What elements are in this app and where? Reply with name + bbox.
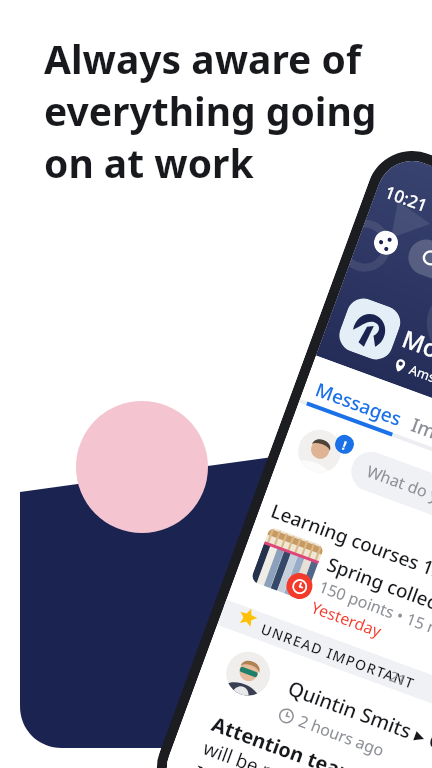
staticText: Amsterdam xyxy=(407,360,432,402)
staticText: 150 points • 15 min xyxy=(316,576,432,646)
staticText: 2 hours ago xyxy=(295,710,387,761)
button[interactable]: Search xyxy=(403,234,432,323)
staticText: Learning courses 12 xyxy=(267,498,432,585)
button[interactable]: What do you think? xyxy=(345,446,432,563)
staticText: Always aware of everything going on at w… xyxy=(44,32,377,189)
staticText: Spring collection xyxy=(323,551,432,628)
staticText: will be new rules next week. I have list… xyxy=(191,735,432,768)
staticText: Mobile xyxy=(398,322,432,380)
button[interactable]: Messages xyxy=(312,376,405,432)
staticText: ! xyxy=(340,437,349,453)
staticText: Attention team Quality! xyxy=(208,710,432,768)
staticText: UNREAD IMPORTANT xyxy=(258,619,418,693)
staticText: What do you think? xyxy=(364,460,432,531)
staticText: Quintin Smits ▸ Quality xyxy=(284,674,432,768)
staticText: 10:21 xyxy=(382,180,431,217)
button[interactable]: Menu xyxy=(371,227,401,258)
staticText: Yesterday xyxy=(308,596,385,642)
staticText: 21 xyxy=(387,666,409,690)
button[interactable]: Important xyxy=(408,412,432,468)
